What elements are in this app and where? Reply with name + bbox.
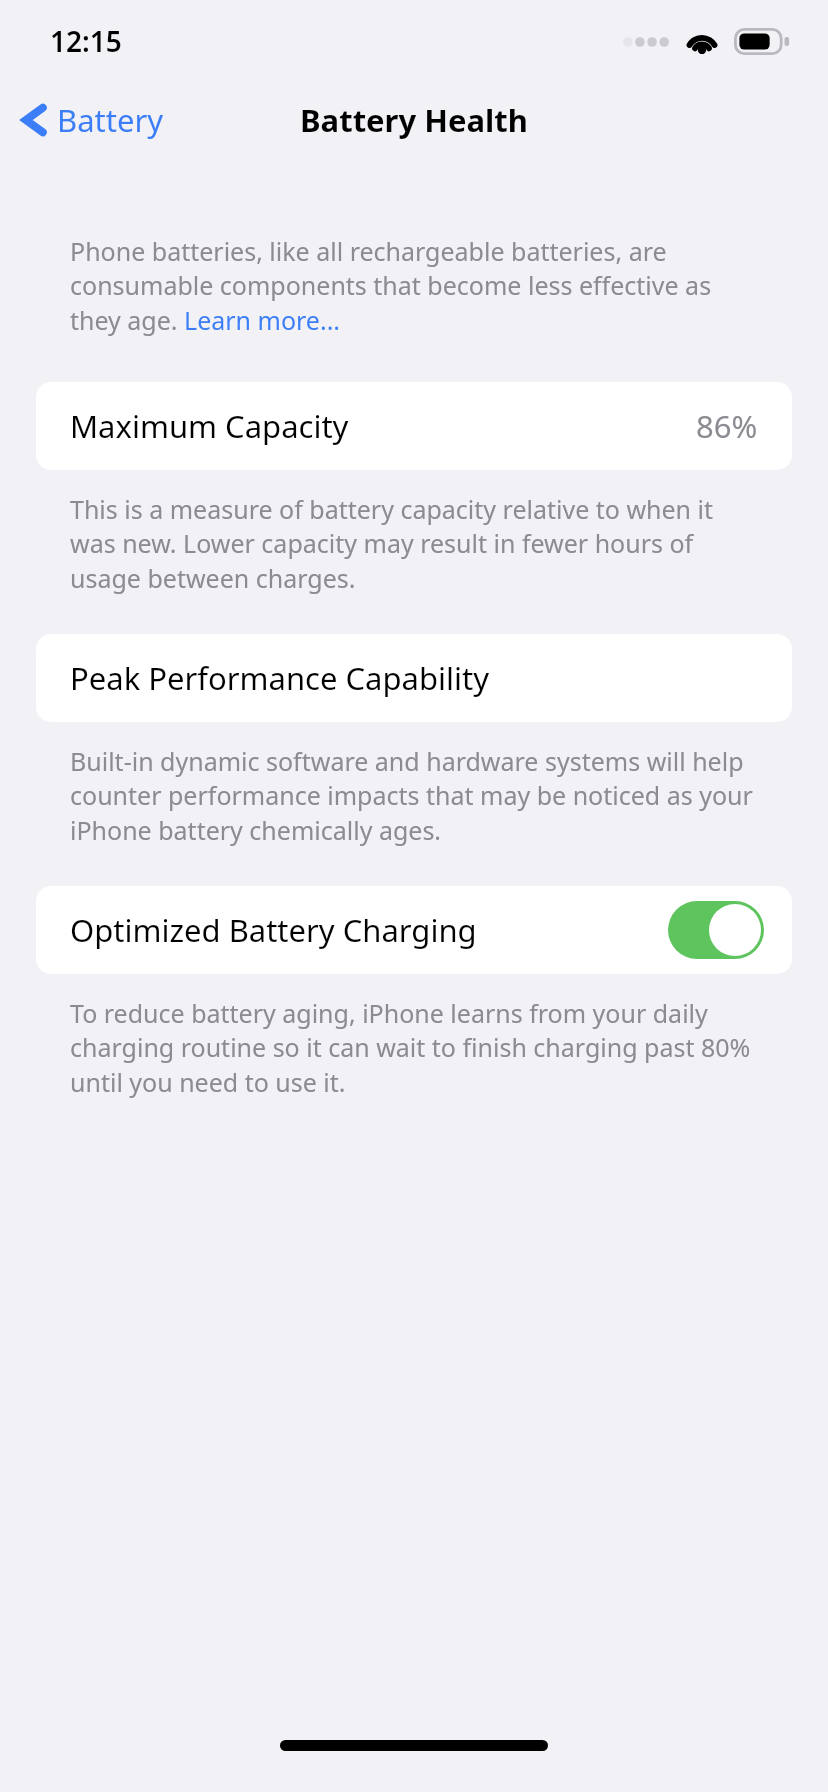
staticText: Maximum Capacity bbox=[70, 405, 349, 447]
button[interactable]: Battery bbox=[14, 88, 172, 152]
staticText: To reduce battery aging, iPhone learns f… bbox=[70, 996, 758, 1100]
button[interactable]: Optimized Battery Charging bbox=[36, 886, 792, 974]
staticText: 12:15 bbox=[50, 22, 122, 60]
staticText: 86% bbox=[696, 405, 758, 447]
staticText: Phone batteries, like all rechargeable b… bbox=[70, 234, 758, 338]
button[interactable]: Peak Performance Capability bbox=[36, 634, 792, 722]
staticText: This is a measure of battery capacity re… bbox=[70, 492, 758, 596]
staticText: Optimized Battery Charging bbox=[70, 909, 477, 951]
staticText: Battery bbox=[57, 99, 164, 141]
button[interactable]: Toggle Optimized Battery Charging bbox=[668, 901, 764, 959]
staticText: Battery Health bbox=[300, 99, 528, 141]
staticText: Peak Performance Capability bbox=[70, 657, 489, 699]
button[interactable]: Maximum Capacity bbox=[36, 382, 792, 470]
staticText: Built-in dynamic software and hardware s… bbox=[70, 744, 758, 848]
